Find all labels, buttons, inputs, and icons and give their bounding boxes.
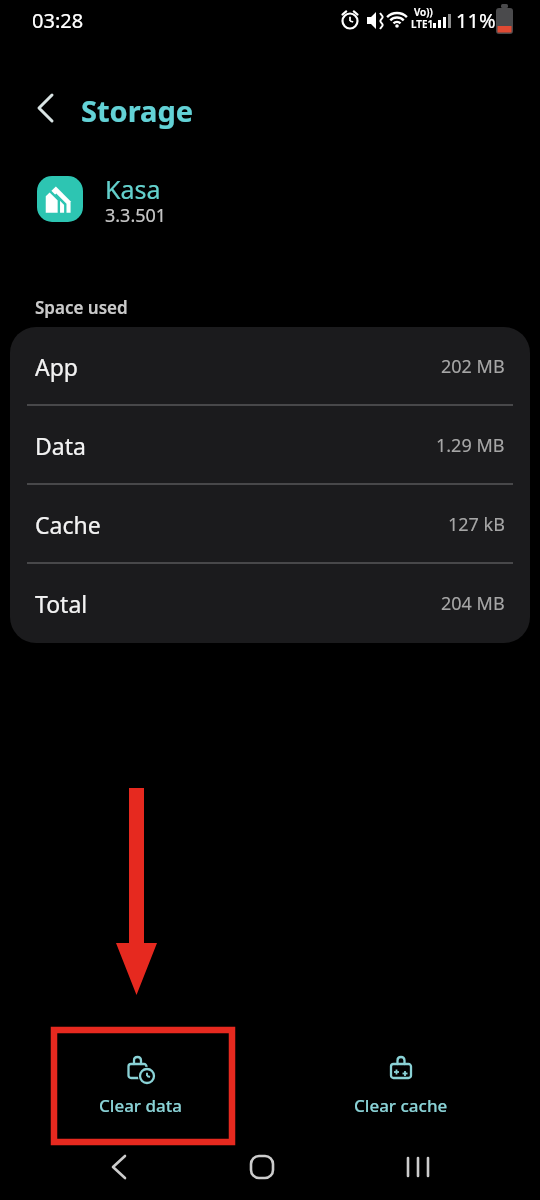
staticText: 03:28 [32,7,84,34]
button[interactable]: App [10,327,530,406]
button[interactable] [97,1145,141,1189]
staticText: Vo)) [414,5,433,19]
button[interactable] [25,88,69,128]
staticText: LTE1 [411,17,434,31]
staticText: App [35,351,78,382]
staticText: Clear data [99,1094,182,1117]
button[interactable]: Cache [10,485,530,564]
staticText: Data [35,430,86,461]
staticText: Cache [35,509,101,540]
staticText: Clear cache [354,1094,448,1117]
staticText: 127 kB [448,512,505,537]
staticText: 204 MB [441,591,505,616]
staticText: Space used [35,296,128,319]
button[interactable]: Total [10,564,530,643]
staticText: Storage [81,91,194,130]
button[interactable]: Data [10,406,530,485]
staticText: Total [35,588,88,619]
button[interactable]: Clear data [57,1033,223,1138]
staticText: 11% [456,7,496,34]
button[interactable] [396,1145,440,1189]
staticText: Kasa [105,172,161,206]
staticText: 202 MB [441,354,505,379]
button[interactable] [240,1145,284,1189]
staticText: 3.3.501 [105,203,167,228]
staticText: 1.29 MB [436,433,505,458]
button[interactable]: Clear cache [318,1033,484,1138]
